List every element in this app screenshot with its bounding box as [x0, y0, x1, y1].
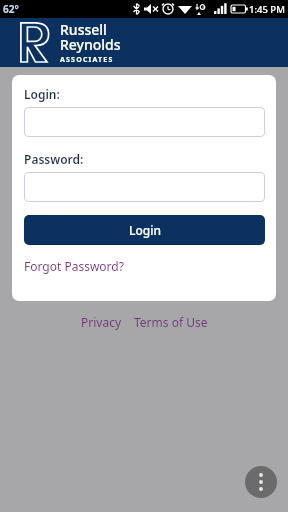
- staticText: 1:45 PM: [249, 3, 285, 16]
- staticText: Russell: [60, 20, 107, 39]
- button[interactable]: Terms of Use: [134, 314, 208, 330]
- button[interactable]: Privacy: [81, 314, 122, 330]
- staticText: Reynolds: [60, 35, 121, 54]
- staticText: Terms of Use: [134, 314, 208, 330]
- staticText: ASSOCIATES: [60, 55, 114, 65]
- button[interactable]: [24, 107, 265, 137]
- staticText: Privacy: [81, 314, 122, 330]
- staticText: Forgot Password?: [24, 258, 124, 274]
- button[interactable]: [24, 172, 265, 202]
- button[interactable]: Login: [24, 215, 265, 245]
- staticText: 62°: [3, 2, 19, 16]
- button[interactable]: Forgot Password?: [24, 258, 124, 274]
- button[interactable]: [245, 466, 277, 498]
- staticText: Login: [129, 222, 161, 238]
- staticText: Login:: [24, 86, 60, 102]
- staticText: Password:: [24, 151, 84, 167]
